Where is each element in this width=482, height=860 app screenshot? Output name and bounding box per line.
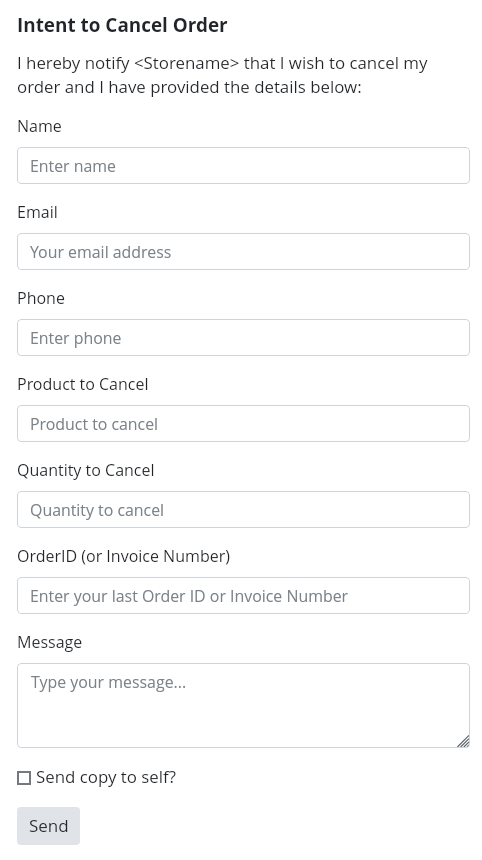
staticText: Quantity to Cancel — [17, 459, 155, 481]
staticText: Send copy to self? — [36, 766, 176, 788]
staticText: Product to Cancel — [17, 373, 149, 395]
button[interactable]: Product to Cancel — [17, 405, 470, 442]
staticText: Type your message... — [31, 671, 187, 693]
staticText: Send — [29, 815, 69, 837]
button[interactable]: Message — [17, 663, 470, 748]
staticText: OrderID (or Invoice Number) — [17, 545, 230, 567]
staticText: I hereby notify <Storename> that I wish … — [17, 50, 447, 98]
button[interactable]: Quantity to Cancel — [17, 491, 470, 528]
button[interactable]: Name — [17, 147, 470, 184]
staticText: Name — [17, 115, 62, 137]
staticText: Your email address — [30, 241, 172, 263]
staticText: Enter phone — [30, 327, 122, 349]
staticText: Enter your last Order ID or Invoice Numb… — [30, 585, 349, 607]
button[interactable]: Send — [17, 807, 80, 845]
staticText: Enter name — [30, 155, 117, 177]
button[interactable]: Send copy to self? — [17, 766, 176, 788]
button[interactable]: Email — [17, 233, 470, 270]
staticText: Product to cancel — [30, 413, 159, 435]
staticText: Message — [17, 631, 83, 653]
staticText: Intent to Cancel Order — [17, 12, 228, 37]
button[interactable]: OrderID (or Invoice Number) — [17, 577, 470, 614]
button[interactable]: Phone — [17, 319, 470, 356]
staticText: Phone — [17, 287, 65, 309]
staticText: Quantity to cancel — [30, 499, 165, 521]
staticText: Email — [17, 201, 58, 223]
